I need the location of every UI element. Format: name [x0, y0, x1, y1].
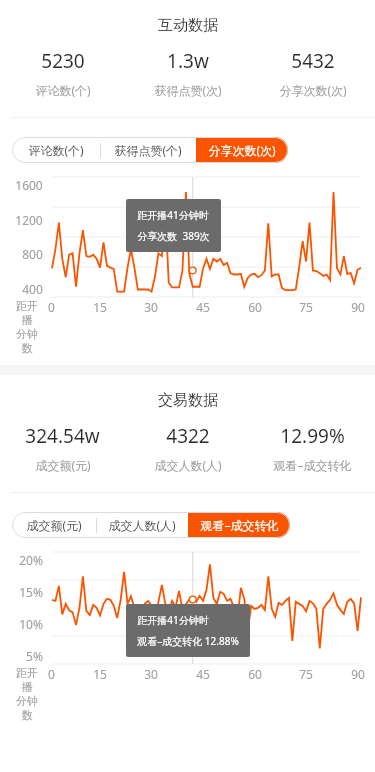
staticText: 观看–成交转化 [200, 517, 279, 533]
staticText: 观看–成交转化 12.88% [137, 634, 239, 648]
staticText: 60 [248, 666, 262, 682]
staticText: 5432 [291, 48, 335, 74]
staticText: 1600 [15, 177, 43, 193]
staticText: 5% [26, 648, 43, 664]
button[interactable]: 成交额(元) [12, 512, 96, 538]
staticText: 15% [19, 584, 43, 600]
staticText: 1.3w [167, 48, 209, 74]
staticText: 45 [196, 666, 210, 682]
staticText: 分享次数 389次 [137, 229, 210, 243]
staticText: 成交额(元) [35, 457, 91, 473]
staticText: 90 [351, 299, 365, 315]
button[interactable]: 观看–成交转化 [188, 512, 290, 538]
staticText: 成交人数(人) [154, 457, 222, 473]
staticText: 12.99% [280, 423, 345, 449]
button[interactable]: 分享次数(次) [196, 137, 288, 163]
staticText: 324.54w [25, 423, 100, 449]
staticText: 评论数(个) [28, 142, 84, 158]
staticText: 75 [299, 666, 313, 682]
staticText: 4322 [166, 423, 210, 449]
staticText: 45 [196, 299, 210, 315]
staticText: 1200 [15, 212, 43, 228]
staticText: 成交人数(人) [108, 517, 176, 533]
staticText: 分享次数(次) [279, 82, 347, 98]
button[interactable]: 评论数(个) [12, 137, 100, 163]
staticText: 90 [351, 666, 365, 682]
staticText: 15 [93, 666, 107, 682]
staticText: 分享次数(次) [208, 142, 276, 158]
staticText: 75 [299, 299, 313, 315]
staticText: 800 [22, 246, 43, 262]
staticText: 分钟数 [11, 694, 43, 722]
staticText: 距开播41分钟时 [137, 208, 209, 222]
staticText: 0 [48, 299, 55, 315]
staticText: 获得点赞(次) [154, 82, 222, 98]
staticText: 交易数据 [158, 391, 218, 410]
staticText: 20% [19, 552, 43, 568]
staticText: 30 [144, 299, 158, 315]
button[interactable]: 成交人数(人) [96, 512, 188, 538]
staticText: 距开播 [11, 299, 43, 327]
staticText: 15 [93, 299, 107, 315]
staticText: 距开播41分钟时 [137, 613, 209, 627]
button[interactable]: 获得点赞(个) [100, 137, 196, 163]
staticText: 观看–成交转化 [273, 457, 352, 473]
staticText: 获得点赞(个) [114, 142, 182, 158]
staticText: 评论数(个) [35, 82, 91, 98]
staticText: 60 [248, 299, 262, 315]
staticText: 0 [48, 666, 55, 682]
staticText: 30 [144, 666, 158, 682]
staticText: 距开播 [11, 666, 43, 694]
staticText: 互动数据 [158, 16, 218, 35]
staticText: 成交额(元) [26, 517, 82, 533]
staticText: 分钟数 [11, 327, 43, 355]
staticText: 10% [19, 616, 43, 632]
staticText: 400 [22, 281, 43, 297]
staticText: 5230 [41, 48, 85, 74]
